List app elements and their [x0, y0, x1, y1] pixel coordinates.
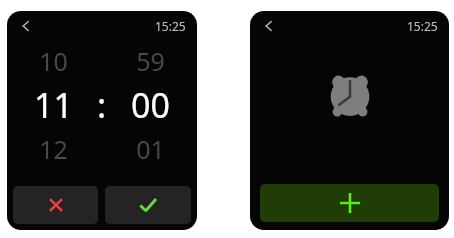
staticText: :: [97, 82, 107, 128]
staticText: 01: [136, 132, 165, 166]
staticText: 10: [39, 44, 68, 78]
button[interactable]: 11: [13, 81, 94, 129]
button[interactable]: Back: [259, 16, 279, 36]
button[interactable]: Confirm: [105, 186, 191, 224]
button[interactable]: Add alarm: [260, 184, 439, 222]
staticText: 59: [136, 44, 165, 78]
staticText: 15:25: [155, 18, 186, 34]
staticText: 11: [34, 82, 73, 128]
button[interactable]: 01: [110, 129, 191, 169]
staticText: 00: [131, 82, 170, 128]
staticText: 12: [39, 132, 68, 166]
staticText: 15:25: [407, 18, 438, 34]
button[interactable]: 10: [13, 41, 94, 81]
button[interactable]: Cancel: [13, 186, 98, 224]
button[interactable]: Back: [16, 16, 36, 36]
button[interactable]: 12: [13, 129, 94, 169]
button[interactable]: 59: [110, 41, 191, 81]
button[interactable]: 00: [110, 81, 191, 129]
